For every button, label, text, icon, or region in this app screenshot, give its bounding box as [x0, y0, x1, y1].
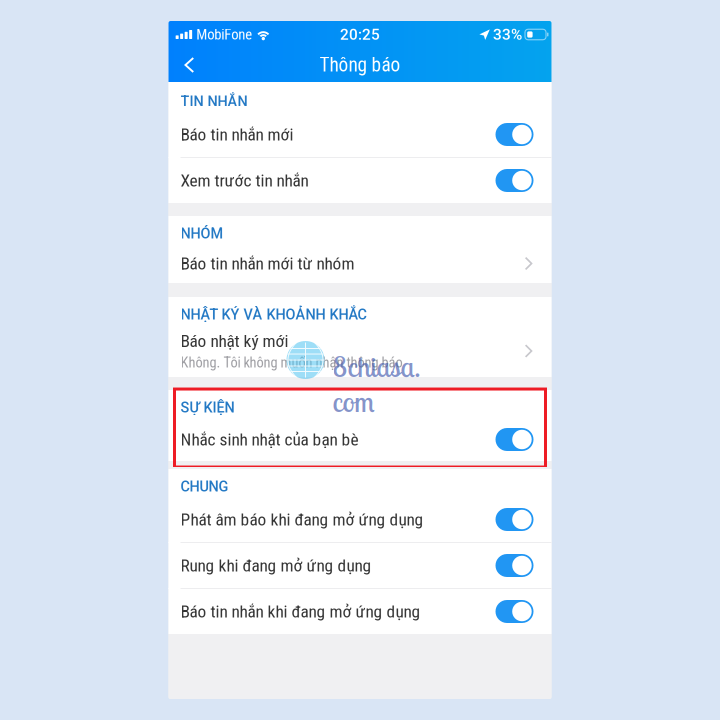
button[interactable]: Báo tin nhắn mới — [168, 112, 551, 157]
button[interactable]: Xem trước tin nhắn — [168, 158, 551, 203]
staticText: Báo nhật ký mới — [180, 331, 288, 351]
staticText: Phát âm báo khi đang mở ứng dụng — [180, 509, 423, 530]
staticText: Báo tin nhắn khi đang mở ứng dụng — [180, 601, 420, 622]
staticText: CHUNG — [180, 478, 228, 495]
button[interactable]: Báo nhật ký mới — [168, 325, 551, 377]
staticText: NHÓM — [180, 225, 223, 242]
staticText: Xem trước tin nhắn — [180, 170, 308, 191]
button[interactable]: Rung khi đang mở ứng dụng — [168, 543, 551, 588]
button[interactable]: Báo tin nhắn khi đang mở ứng dụng — [168, 589, 551, 634]
staticText: Không. Tôi không muốn nhận thông báo — [180, 354, 402, 371]
staticText: 20:25 — [340, 25, 380, 43]
staticText: SỰ KIỆN — [180, 399, 234, 416]
staticText: Thông báo — [319, 54, 400, 76]
staticText: TIN NHẮN — [180, 93, 247, 110]
staticText: NHẬT KÝ VÀ KHOẢNH KHẮC — [180, 306, 366, 323]
staticText: 33% — [493, 25, 522, 43]
staticText: Báo tin nhắn mới — [180, 124, 293, 145]
staticText: Nhắc sinh nhật của bạn bè — [180, 429, 358, 450]
staticText: Rung khi đang mở ứng dụng — [180, 555, 371, 576]
button[interactable]: Nhắc sinh nhật của bạn bè — [168, 418, 551, 461]
button[interactable]: Phát âm báo khi đang mở ứng dụng — [168, 497, 551, 542]
staticText: Báo tin nhắn mới từ nhóm — [180, 253, 354, 274]
staticText: MobiFone — [196, 26, 252, 43]
staticText: 8chiasa.com — [332, 349, 420, 419]
button[interactable]: Back — [168, 48, 210, 82]
button[interactable]: Báo tin nhắn mới từ nhóm — [168, 244, 551, 283]
